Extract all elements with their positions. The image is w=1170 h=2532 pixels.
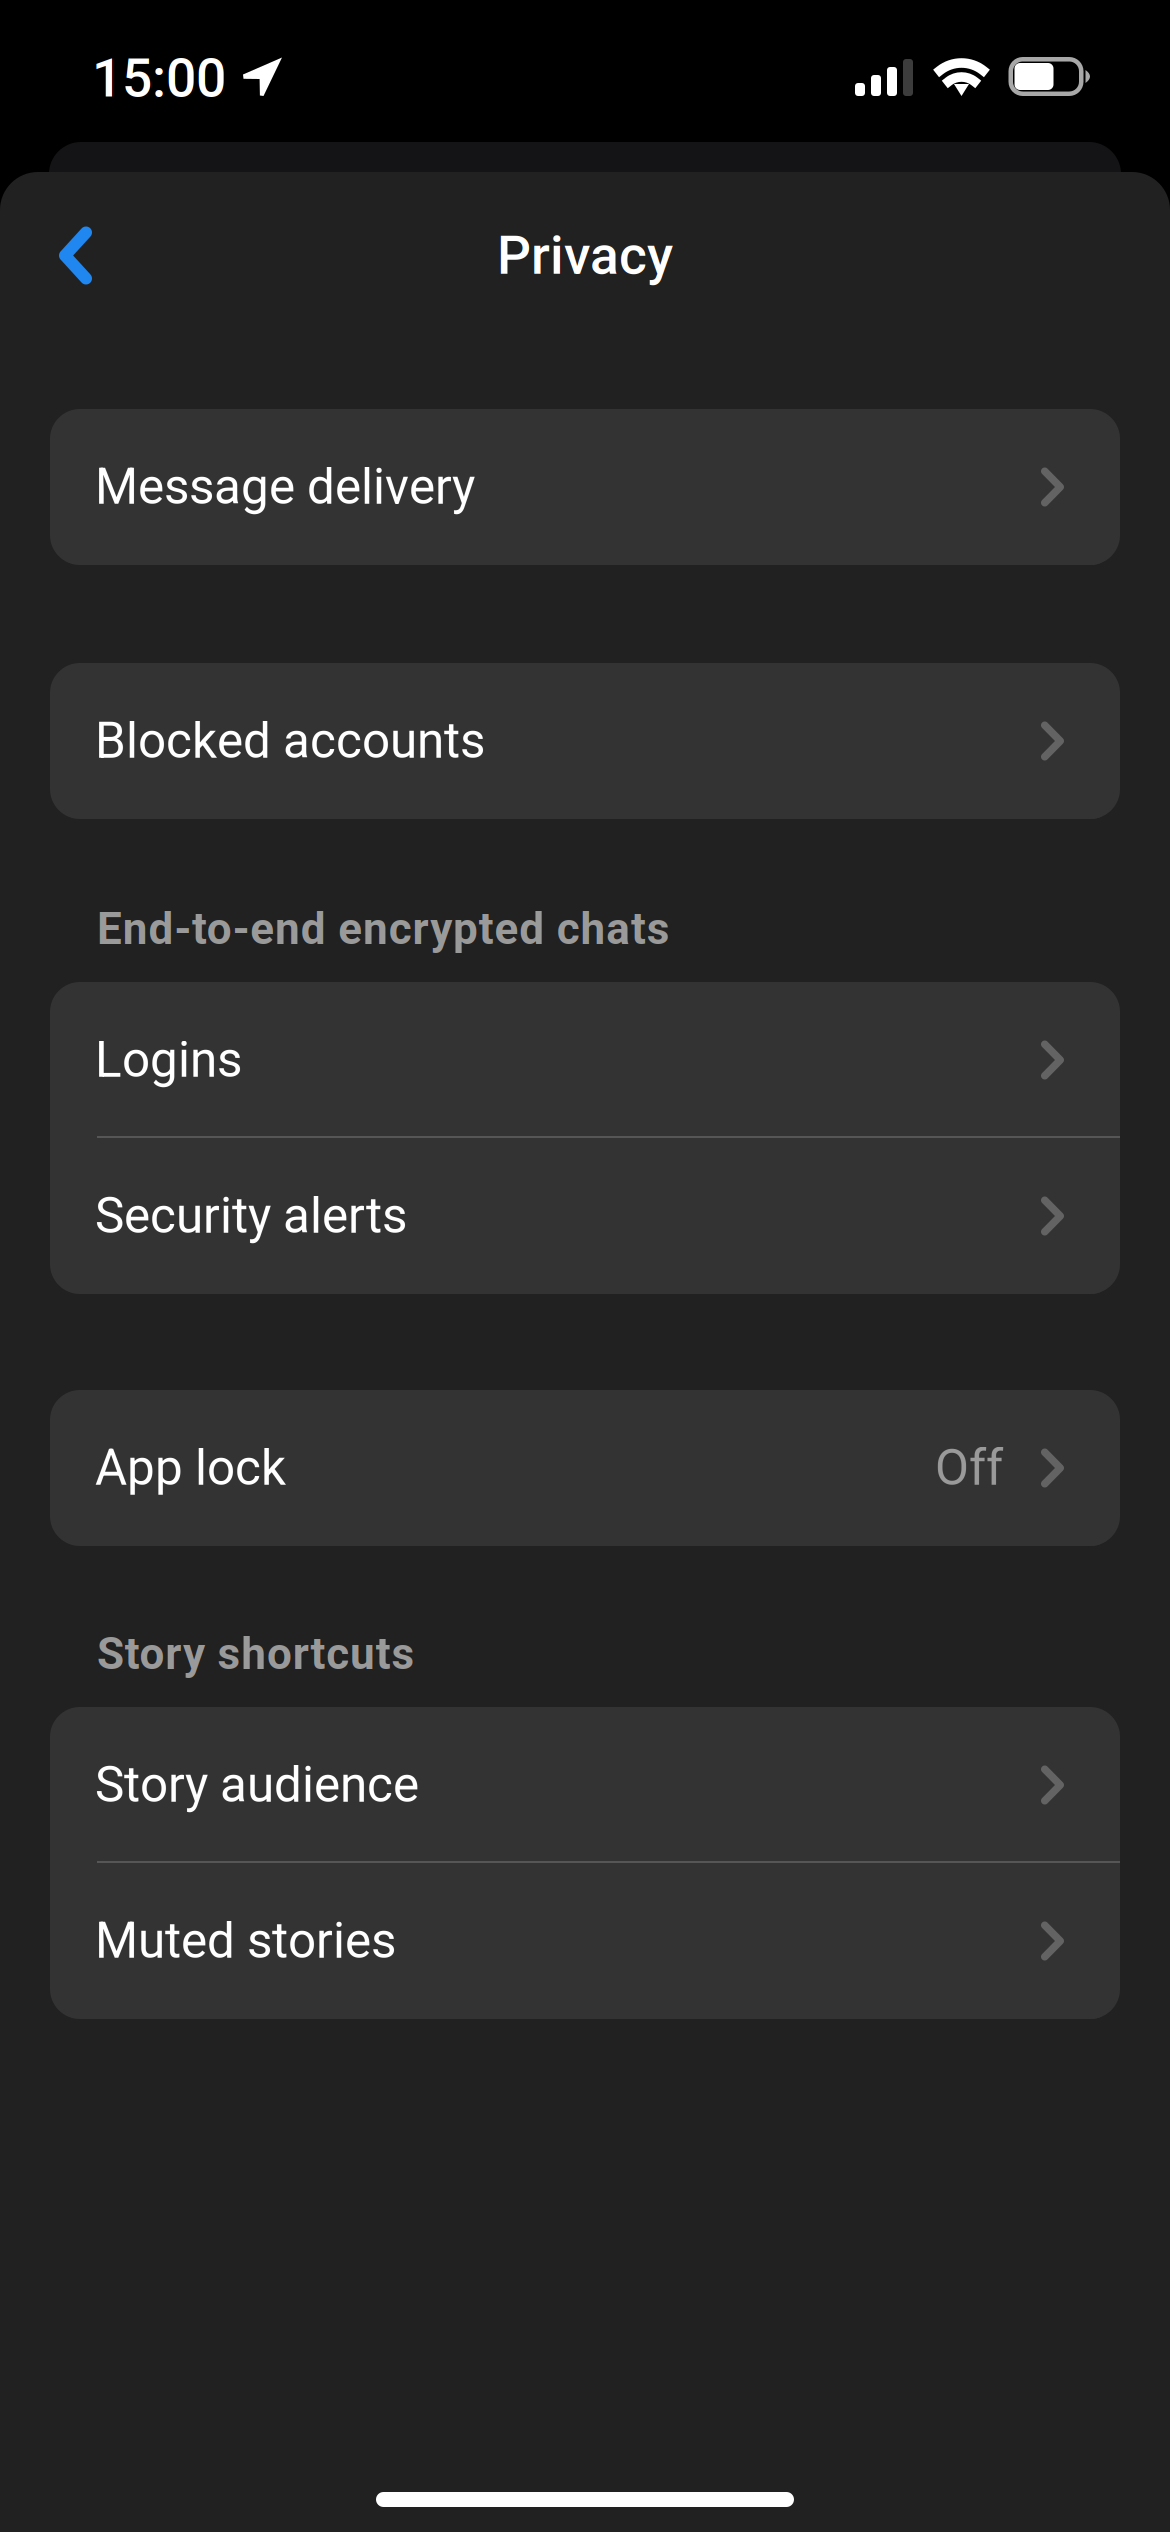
staticText: Logins — [95, 1031, 242, 1089]
staticText: Blocked accounts — [95, 712, 485, 770]
button[interactable]: App lock — [50, 1390, 1120, 1546]
button[interactable]: Story audience — [50, 1707, 1120, 1863]
button[interactable]: Blocked accounts — [50, 663, 1120, 819]
staticText: Story shortcuts — [97, 1628, 414, 1680]
button[interactable]: Muted stories — [50, 1863, 1120, 2019]
button[interactable]: Logins — [50, 982, 1120, 1138]
staticText: Off — [935, 1439, 1003, 1497]
staticText: Privacy — [497, 224, 673, 287]
button[interactable]: Back — [0, 172, 200, 339]
staticText: Security alerts — [95, 1187, 407, 1245]
staticText: App lock — [95, 1439, 286, 1497]
button[interactable]: Message delivery — [50, 409, 1120, 565]
staticText: End-to-end encrypted chats — [97, 903, 670, 955]
staticText: Message delivery — [95, 458, 475, 516]
button[interactable]: Security alerts — [50, 1138, 1120, 1294]
staticText: Story audience — [95, 1756, 419, 1814]
staticText: 15:00 — [92, 47, 226, 109]
staticText: Muted stories — [95, 1912, 396, 1970]
